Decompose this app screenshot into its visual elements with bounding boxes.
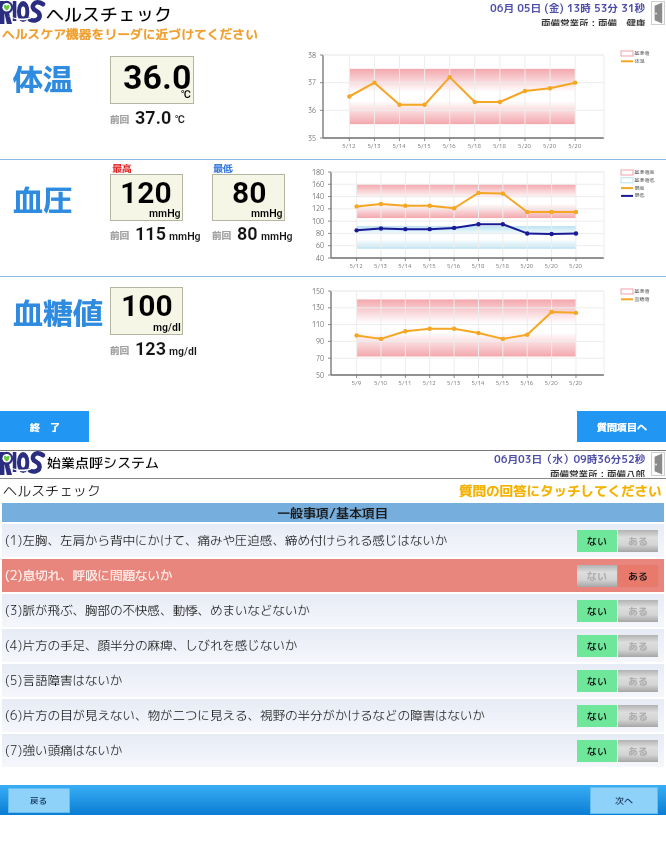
staticText: ある (628, 709, 648, 723)
staticText: ある (628, 674, 648, 688)
button[interactable]: 次へ (590, 787, 658, 814)
button[interactable]: (7)強い頭痛はないか (2, 734, 664, 767)
staticText: 質問項目へ (597, 420, 647, 434)
staticText: 次へ (615, 794, 634, 807)
staticText: 体温 (13, 58, 73, 100)
button[interactable]: 終 了 (0, 411, 89, 442)
staticText: 06月 05日 (金) 13時 53分 31秒 (490, 1, 646, 16)
staticText: (1)左胸、左肩から背中にかけて、痛みや圧迫感、締め付けられる感じはないか (5, 532, 448, 549)
staticText: ない (587, 534, 607, 548)
staticText: ない (587, 604, 607, 618)
staticText: 両備営業所：両備 健康 (541, 17, 646, 26)
staticText: ある (628, 639, 648, 653)
staticText: (6)片方の目が見えない、物が二つに見える、視野の半分がかけるなどの障害はないか (5, 707, 485, 724)
button[interactable]: ない (577, 740, 617, 762)
staticText: 始業点呼システム (47, 453, 159, 473)
button[interactable]: ある (618, 530, 658, 552)
staticText: 前回 (110, 113, 130, 126)
button[interactable]: (1)左胸、左肩から背中にかけて、痛みや圧迫感、締め付けられる感じはないか (2, 524, 664, 557)
button[interactable]: 戻る (8, 788, 70, 813)
staticText: 両備営業所：両備八郎 (550, 468, 646, 477)
button[interactable]: ない (577, 635, 617, 657)
staticText: 115 (135, 223, 166, 244)
staticText: mmHg (169, 230, 201, 242)
staticText: mmHg (149, 207, 181, 219)
staticText: 120 (120, 175, 172, 210)
button[interactable]: ない (577, 600, 617, 622)
button[interactable]: (2)息切れ、呼吸に問題ないか (2, 559, 664, 592)
button[interactable]: (6)片方の目が見えない、物が二つに見える、視野の半分がかけるなどの障害はないか (2, 699, 664, 732)
staticText: ヘルスチェック (46, 2, 172, 27)
button[interactable]: ない (577, 565, 617, 587)
staticText: 前回 (212, 229, 232, 242)
staticText: 前回 (110, 229, 130, 242)
button[interactable]: 質問項目へ (577, 411, 666, 442)
button[interactable]: (3)脈が飛ぶ、胸部の不快感、動悸、めまいなどないか (2, 594, 664, 627)
staticText: (7)強い頭痛はないか (5, 742, 123, 759)
staticText: (5)言語障害はないか (5, 672, 123, 689)
staticText: ない (587, 569, 607, 583)
staticText: (4)片方の手足、顔半分の麻痺、しびれを感じないか (5, 637, 298, 654)
staticText: 血圧 (13, 179, 73, 221)
button[interactable]: ない (577, 530, 617, 552)
staticText: 一般事項/基本項目 (277, 504, 389, 522)
button[interactable]: ある (618, 600, 658, 622)
button[interactable]: (4)片方の手足、顔半分の麻痺、しびれを感じないか (2, 629, 664, 662)
staticText: ない (587, 709, 607, 723)
staticText: (3)脈が飛ぶ、胸部の不快感、動悸、めまいなどないか (5, 602, 310, 619)
staticText: mg/dl (169, 345, 197, 357)
staticText: 06月03日（水）09時36分52秒 (494, 452, 646, 467)
staticText: 80 (232, 175, 267, 210)
staticText: mg/dl (153, 321, 181, 333)
staticText: 36.0 (123, 57, 192, 97)
button[interactable]: ある (618, 565, 658, 587)
staticText: ℃ (175, 113, 185, 126)
button[interactable]: Exit (651, 1, 665, 25)
staticText: 前回 (110, 344, 130, 357)
staticText: ℃ (181, 88, 191, 101)
button[interactable]: ある (618, 670, 658, 692)
staticText: 80 (237, 223, 258, 244)
staticText: ヘルスチェック (3, 481, 101, 501)
staticText: 戻る (30, 795, 48, 807)
staticText: 血糖値 (13, 292, 103, 334)
button[interactable]: ある (618, 740, 658, 762)
button[interactable]: (5)言語障害はないか (2, 664, 664, 697)
staticText: 質問の回答にタッチしてください (459, 481, 662, 500)
button[interactable]: ある (618, 705, 658, 727)
staticText: 37.0 (135, 107, 172, 128)
button[interactable]: ない (577, 705, 617, 727)
staticText: 最高 (112, 161, 132, 175)
staticText: ある (628, 604, 648, 618)
button[interactable]: ある (618, 635, 658, 657)
staticText: ある (628, 534, 648, 548)
staticText: ある (628, 744, 648, 758)
button[interactable]: ない (577, 670, 617, 692)
staticText: ない (587, 639, 607, 653)
staticText: 最低 (213, 161, 233, 175)
staticText: mmHg (261, 230, 293, 242)
staticText: ない (587, 744, 607, 758)
staticText: 123 (135, 338, 166, 359)
button[interactable]: Exit (651, 452, 665, 476)
staticText: 100 (121, 288, 173, 323)
staticText: ある (628, 569, 648, 583)
staticText: 終 了 (30, 420, 60, 434)
staticText: (2)息切れ、呼吸に問題ないか (5, 567, 173, 584)
staticText: ヘルスケア機器をリーダに近づけてください (2, 25, 258, 43)
staticText: ない (587, 674, 607, 688)
staticText: mmHg (251, 207, 283, 219)
